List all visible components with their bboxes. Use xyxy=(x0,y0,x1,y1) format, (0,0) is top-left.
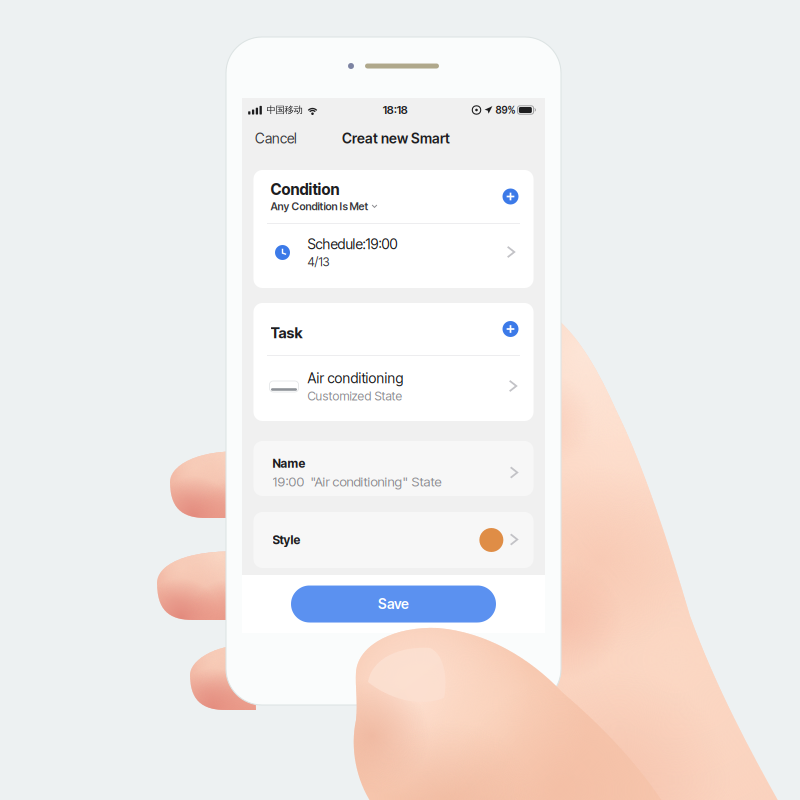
staticText: 4/13 xyxy=(307,255,329,269)
staticText: Condition xyxy=(270,180,339,199)
staticText: Save xyxy=(378,595,409,612)
button[interactable]: Air conditioning xyxy=(253,356,533,421)
button[interactable]: Add xyxy=(497,183,523,209)
staticText: 19:00 "Air conditioning" State xyxy=(272,474,441,490)
staticText: Schedule:19:00 xyxy=(307,236,397,253)
staticText: Name xyxy=(272,456,305,471)
staticText: 18:18 xyxy=(383,103,408,117)
staticText: Air conditioning xyxy=(307,370,403,386)
staticText: 89% xyxy=(495,104,515,116)
staticText: Task xyxy=(270,324,302,342)
button[interactable]: Cancel xyxy=(242,121,310,156)
staticText: Customized State xyxy=(307,388,402,403)
button[interactable]: Schedule:19:00 xyxy=(253,224,533,288)
button[interactable]: Add xyxy=(497,316,523,342)
staticText: 中国移动 xyxy=(266,104,302,116)
staticText: Style xyxy=(272,533,300,547)
button[interactable]: Name xyxy=(253,441,533,496)
staticText: Creat new Smart xyxy=(342,130,450,147)
staticText: Cancel xyxy=(255,130,297,147)
button[interactable]: Style xyxy=(253,512,533,568)
button[interactable]: Save xyxy=(242,575,545,633)
staticText: Any Condition Is Met xyxy=(270,200,368,213)
